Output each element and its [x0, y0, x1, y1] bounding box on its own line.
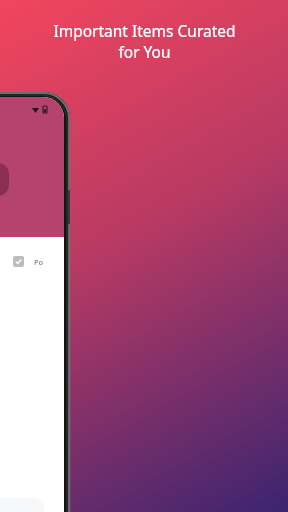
staticText: for You: [118, 41, 171, 62]
button[interactable]: Selected: [13, 256, 44, 267]
other: Selected: [13, 256, 24, 267]
staticText: Important Items Curated: [53, 20, 236, 41]
button[interactable]: p on: [0, 163, 9, 196]
staticText: Po: [34, 257, 44, 267]
